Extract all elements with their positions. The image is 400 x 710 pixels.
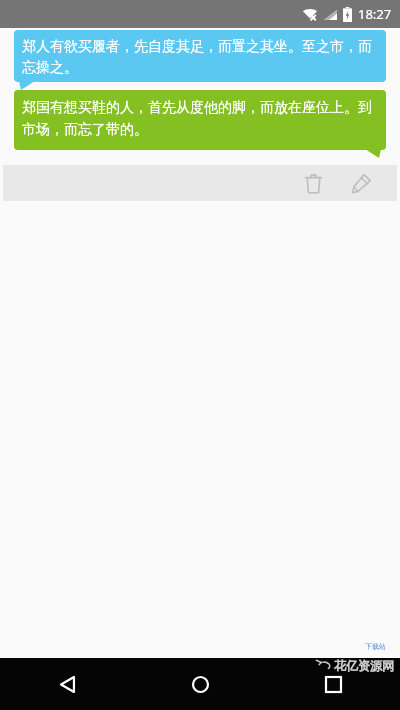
staticText: 花亿资源网 — [334, 658, 394, 673]
staticText: 18:27 — [358, 5, 392, 23]
button[interactable]: Back — [0, 658, 134, 710]
button[interactable]: 郑国有想买鞋的人，首先从度他的脚，而放在座位上。到市场，而忘了带的。 — [14, 90, 386, 150]
staticText: 郑国有想买鞋的人，首先从度他的脚，而放在座位上。到市场，而忘了带的。 — [22, 96, 378, 140]
button[interactable]: Edit — [343, 165, 379, 201]
staticText: 郑人有欲买履者，先自度其足，而置之其坐。至之市，而忘操之。 — [22, 35, 378, 77]
button[interactable]: 郑人有欲买履者，先自度其足，而置之其坐。至之市，而忘操之。 — [14, 30, 386, 82]
button[interactable]: Delete — [295, 165, 331, 201]
button[interactable]: Recents — [267, 658, 400, 710]
button[interactable]: Home — [134, 658, 267, 710]
staticText: 下载站 — [365, 642, 386, 651]
